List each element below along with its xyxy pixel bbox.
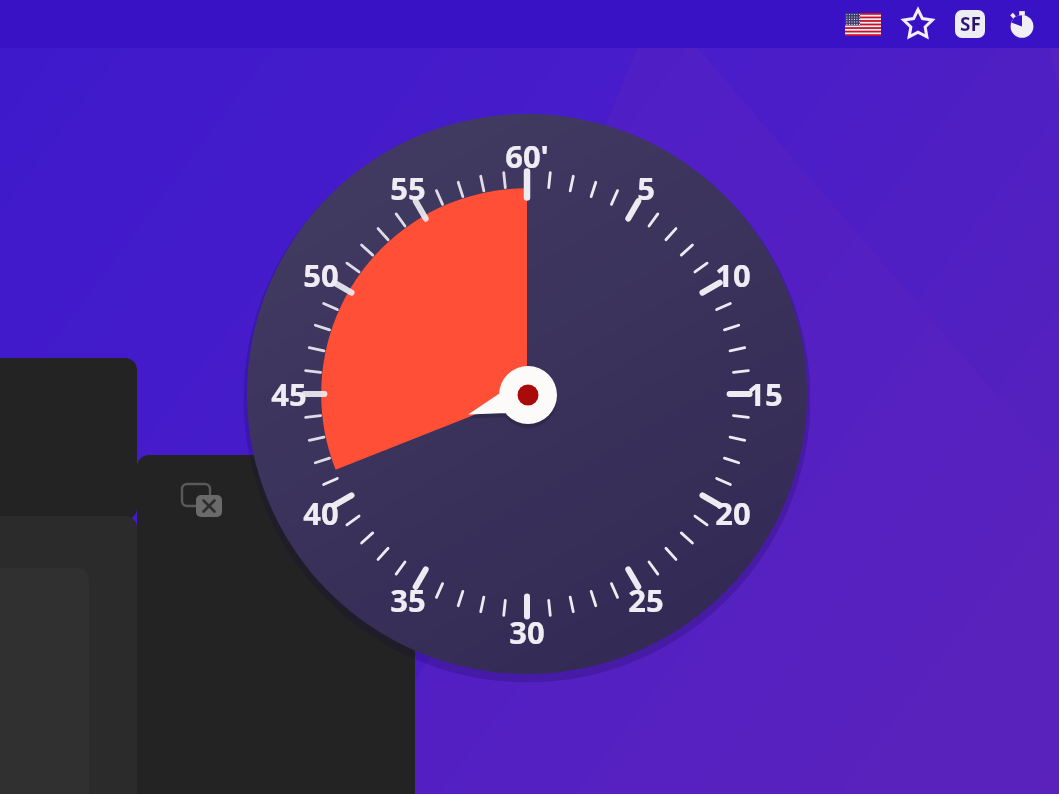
- staticText: SF: [960, 11, 981, 37]
- staticText: 20: [715, 492, 751, 534]
- staticText: 10: [715, 254, 751, 296]
- staticText: 30: [509, 611, 545, 653]
- button[interactable]: Timer: [999, 4, 1045, 44]
- staticText: 55: [390, 167, 426, 209]
- staticText: 50: [303, 254, 339, 296]
- staticText: 60': [505, 135, 549, 177]
- staticText: 35: [390, 579, 426, 621]
- staticText: 45: [271, 373, 307, 415]
- staticText: 15: [747, 373, 783, 415]
- staticText: 5: [637, 167, 655, 209]
- button[interactable]: Input source: U.S.: [839, 4, 887, 44]
- button[interactable]: San Francisco: [947, 4, 993, 44]
- staticText: 40: [303, 492, 339, 534]
- staticText: 25: [628, 579, 664, 621]
- button[interactable]: Favorites: [895, 4, 941, 44]
